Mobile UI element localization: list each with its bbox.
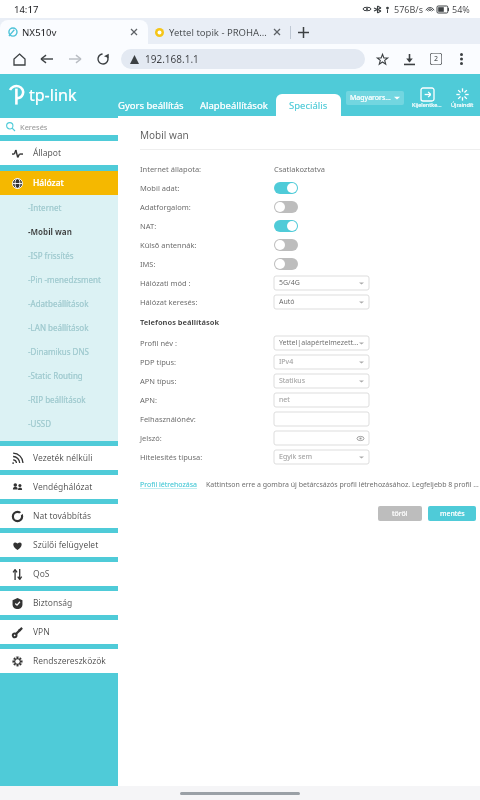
button[interactable]: -Internet	[0, 195, 118, 219]
button[interactable]: More options	[452, 50, 470, 68]
button[interactable]: Biztonság	[0, 591, 118, 615]
button[interactable]: Magyarorsz…	[346, 91, 404, 105]
staticText: APN típus:	[140, 376, 177, 386]
staticText: Biztonság	[33, 597, 73, 609]
button[interactable]: Keresés	[0, 118, 118, 135]
button[interactable]: Egyik sem	[274, 450, 369, 464]
button[interactable]: -Static Routing	[0, 363, 118, 387]
staticText: -RIP beállítások	[28, 394, 86, 405]
button[interactable]: Close tab	[271, 26, 283, 38]
button[interactable]: Off	[274, 201, 298, 213]
staticText: Autó	[279, 297, 359, 307]
button[interactable]: Statikus	[274, 374, 369, 388]
button[interactable]	[274, 412, 369, 426]
button[interactable]: On	[274, 220, 298, 232]
button[interactable]: Downloads	[400, 50, 418, 68]
staticText: tp-link	[29, 84, 77, 106]
staticText: Alapbeállítások	[200, 99, 268, 112]
staticText: APN:	[140, 395, 158, 405]
staticText: Nat továbbítás	[33, 510, 92, 522]
button[interactable]: -Dinamikus DNS	[0, 339, 118, 363]
staticText: 5G/4G	[279, 278, 359, 288]
button[interactable]: Yettel|alapértelmezett:…	[274, 336, 369, 350]
staticText: -Adatbeállítások	[28, 298, 89, 309]
button[interactable]: -Adatbeállítások	[0, 291, 118, 315]
button[interactable]	[274, 431, 369, 445]
staticText: 576B/s	[394, 3, 423, 15]
button[interactable]: -Pin -menedzsment	[0, 267, 118, 291]
staticText: Hitelesítés típusa:	[140, 452, 203, 462]
button[interactable]: Close tab	[128, 26, 140, 38]
button[interactable]: Hálózat	[0, 171, 118, 195]
staticText: QoS	[33, 568, 50, 580]
button[interactable]: töröl	[378, 506, 422, 521]
staticText: Kijelentke…	[412, 101, 442, 108]
staticText: -Dinamikus DNS	[28, 346, 89, 357]
staticText: -LAN beállítások	[28, 322, 89, 333]
staticText: -Pin -menedzsment	[28, 274, 101, 285]
button[interactable]: -RIP beállítások	[0, 387, 118, 411]
staticText: Mobil adat:	[140, 183, 180, 193]
button[interactable]: Tabs	[427, 50, 445, 68]
staticText: Egyik sem	[279, 452, 359, 462]
button[interactable]: NX510v	[0, 20, 148, 44]
button[interactable]: New tab	[291, 20, 315, 44]
button[interactable]: Alapbeállítások	[192, 94, 276, 116]
button[interactable]: Nat továbbítás	[0, 504, 118, 528]
staticText: -ISP frissítés	[28, 250, 74, 261]
button[interactable]: Újraindít	[451, 88, 474, 108]
staticText: Felhasználónév:	[140, 414, 196, 424]
button[interactable]: Autó	[274, 295, 369, 309]
staticText: töröl	[392, 509, 408, 519]
button[interactable]: Rendszereszközök	[0, 649, 118, 673]
button[interactable]: QoS	[0, 562, 118, 586]
button[interactable]: Reload	[94, 50, 112, 68]
staticText: Gyors beállítás	[118, 99, 184, 112]
staticText: Telefonos beállítások	[140, 317, 220, 327]
button[interactable]: mentés	[428, 506, 476, 521]
button[interactable]: Szülői felügyelet	[0, 533, 118, 557]
staticText: VPN	[33, 626, 50, 638]
button[interactable]: Vendéghálózat	[0, 475, 118, 499]
button[interactable]: On	[274, 182, 298, 194]
staticText: Rendszereszközök	[33, 655, 106, 667]
staticText: Yettel topik - PROHARDVE	[169, 26, 271, 39]
button[interactable]: Yettel topik - PROHARDVE	[148, 20, 290, 44]
button[interactable]: -Mobil wan	[0, 219, 118, 243]
staticText: Yettel|alapértelmezett:…	[279, 338, 359, 348]
staticText: mentés	[440, 509, 465, 519]
staticText: Keresés	[20, 122, 48, 132]
button[interactable]: Állapot	[0, 141, 118, 165]
button[interactable]: 192.168.1.1	[121, 49, 365, 69]
staticText: IMS:	[140, 259, 156, 269]
button[interactable]: -LAN beállítások	[0, 315, 118, 339]
button[interactable]: IPv4	[274, 355, 369, 369]
staticText: Mobil wan	[140, 128, 189, 142]
button[interactable]: -USSD	[0, 411, 118, 435]
button[interactable]: Off	[274, 239, 298, 251]
button[interactable]: Bookmark	[373, 50, 391, 68]
staticText: Hálózat	[33, 177, 64, 189]
button[interactable]: Kijelentke…	[412, 88, 442, 108]
button[interactable]: Off	[274, 258, 298, 270]
button[interactable]: -ISP frissítés	[0, 243, 118, 267]
button[interactable]: VPN	[0, 620, 118, 644]
button[interactable]: Forward	[66, 50, 84, 68]
staticText: Külső antennák:	[140, 240, 197, 250]
button[interactable]: Gyors beállítás	[110, 94, 192, 116]
staticText: 14:17	[14, 3, 39, 16]
button[interactable]: net	[274, 393, 369, 407]
button[interactable]: Vezeték nélküli	[0, 446, 118, 470]
button[interactable]: Profil létrehozása	[140, 480, 198, 490]
staticText: PDP típus:	[140, 357, 176, 367]
button[interactable]: 5G/4G	[274, 276, 369, 290]
staticText: 192.168.1.1	[145, 52, 199, 66]
staticText: Újraindít	[451, 101, 474, 108]
button[interactable]: Home	[10, 50, 28, 68]
button[interactable]: Speciális	[276, 94, 341, 116]
staticText: Speciális	[289, 99, 328, 112]
staticText: -USSD	[28, 418, 52, 429]
button[interactable]: Back	[38, 50, 56, 68]
